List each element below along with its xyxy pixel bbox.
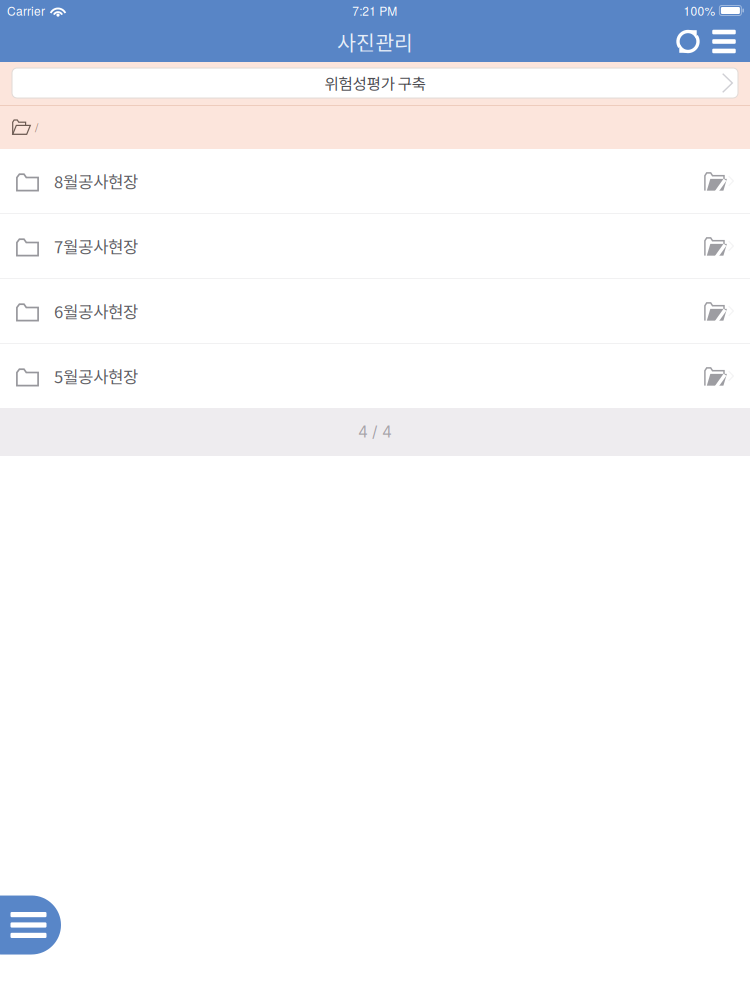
staticText: 5월공사현장 bbox=[54, 364, 138, 388]
button[interactable]: Refresh bbox=[667, 21, 705, 62]
button[interactable]: 6월공사현장 bbox=[0, 279, 750, 343]
button[interactable]: 5월공사현장 bbox=[0, 344, 750, 408]
button[interactable]: 8월공사현장 bbox=[0, 149, 750, 213]
button[interactable]: Menu bbox=[0, 895, 61, 954]
button[interactable]: 7월공사현장 bbox=[0, 214, 750, 278]
staticText: / bbox=[35, 118, 38, 136]
staticText: 위험성평가 구축 bbox=[324, 72, 425, 94]
staticText: 사진관리 bbox=[337, 26, 413, 56]
staticText: 100% bbox=[683, 2, 715, 19]
button[interactable]: 위험성평가 구축 bbox=[0, 62, 750, 105]
staticText: 6월공사현장 bbox=[54, 299, 138, 323]
staticText: 8월공사현장 bbox=[54, 169, 138, 193]
staticText: Carrier bbox=[7, 2, 45, 19]
button[interactable]: Menu bbox=[705, 21, 743, 62]
staticText: 7:21 PM bbox=[352, 2, 397, 19]
staticText: 7월공사현장 bbox=[54, 234, 138, 258]
staticText: 4 / 4 bbox=[358, 423, 392, 441]
